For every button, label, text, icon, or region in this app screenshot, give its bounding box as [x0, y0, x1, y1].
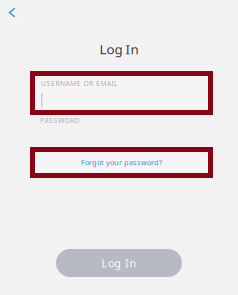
staticText: Log In: [101, 256, 136, 270]
button[interactable]: Log In: [56, 249, 182, 277]
staticText: Log In: [99, 40, 138, 58]
button[interactable]: Back: [1, 1, 29, 27]
staticText: USERNAME OR EMAIL: [41, 79, 117, 88]
staticText: PASSWORD: [40, 116, 79, 125]
staticText: Forgot your password?: [81, 157, 162, 167]
button[interactable]: USERNAME OR EMAIL: [30, 71, 213, 115]
button[interactable]: PASSWORD: [30, 116, 213, 144]
button[interactable]: Forgot your password?: [30, 147, 213, 178]
